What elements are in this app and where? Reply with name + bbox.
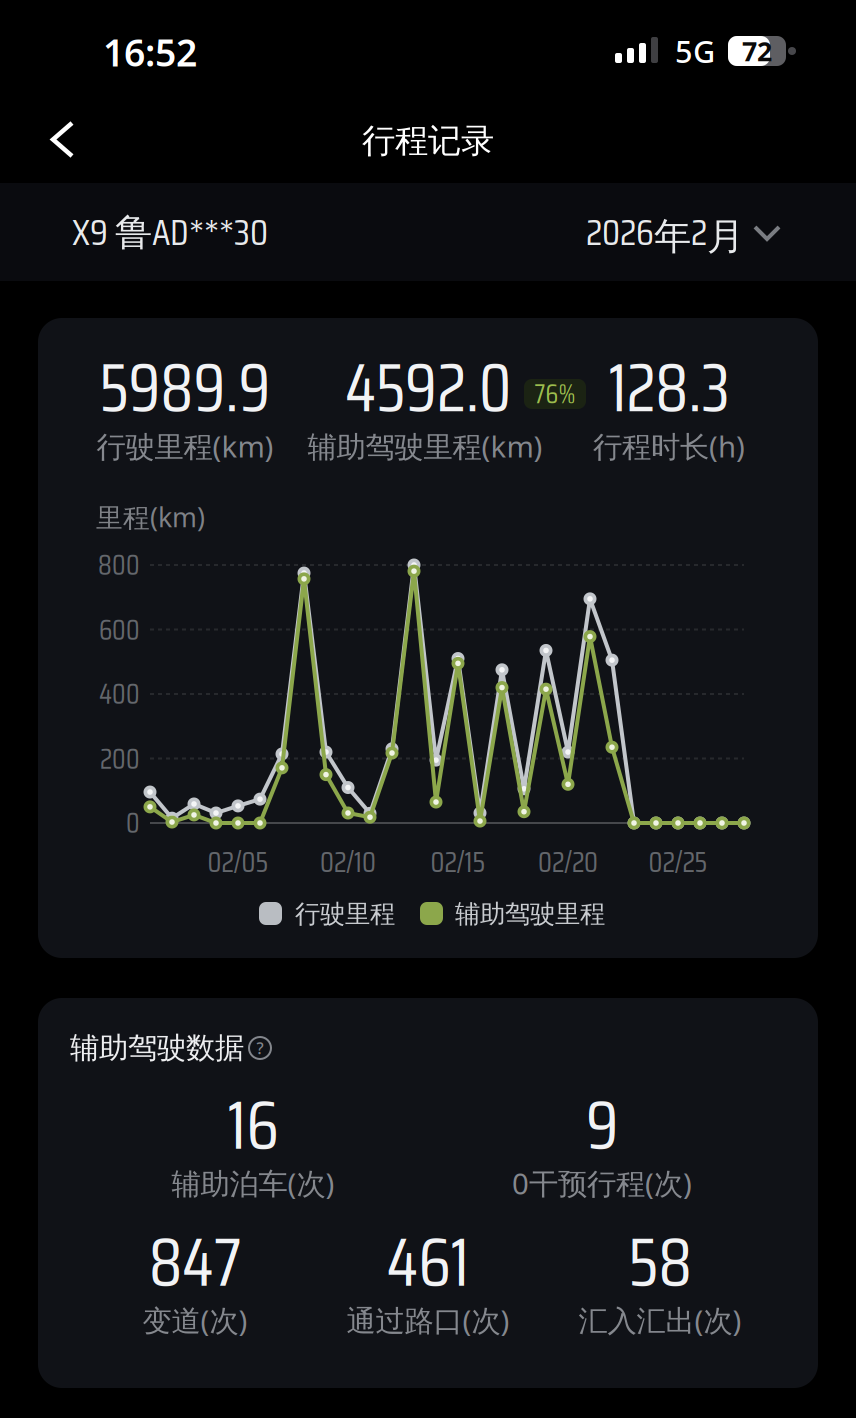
staticText: 76%	[534, 373, 575, 415]
staticText: 02/25	[648, 839, 707, 884]
staticText: 行程时长(h)	[593, 426, 745, 465]
button[interactable]: 选择月份	[0, 0, 180, 110]
staticText: 200	[100, 737, 140, 781]
staticText: 行程记录	[362, 120, 494, 161]
staticText: 0	[126, 801, 140, 845]
staticText: 600	[99, 608, 140, 652]
staticText: 461	[386, 1208, 469, 1315]
staticText: 72	[742, 33, 772, 69]
staticText: 58	[628, 1208, 691, 1315]
staticText: 02/15	[430, 839, 485, 884]
staticText: 行驶里程	[295, 898, 395, 929]
staticText: 9	[586, 1071, 618, 1178]
staticText: X9 鲁AD***30	[72, 203, 268, 261]
button[interactable]: X9 鲁AD***30	[0, 0, 230, 110]
staticText: 16	[227, 1071, 278, 1178]
button[interactable]: 帮助	[245, 1033, 275, 1063]
staticText: 2026年2月	[586, 203, 744, 261]
staticText: 辅助泊车(次)	[171, 1163, 334, 1202]
staticText: 02/20	[538, 839, 598, 884]
staticText: 400	[99, 672, 140, 716]
staticText: 辅助驾驶里程	[455, 898, 605, 929]
staticText: 变道(次)	[142, 1300, 247, 1339]
staticText: 行驶里程(km)	[96, 426, 273, 465]
staticText: 128.3	[608, 335, 729, 440]
staticText: 辅助驾驶数据	[70, 1030, 244, 1066]
staticText: 汇入汇出(次)	[578, 1300, 741, 1339]
staticText: 4592.0	[345, 335, 511, 440]
staticText: 辅助驾驶里程(km)	[307, 426, 542, 465]
staticText: 5G	[675, 31, 715, 71]
staticText: 5989.9	[99, 335, 270, 440]
staticText: 0干预行程(次)	[512, 1163, 692, 1202]
staticText: 800	[98, 543, 140, 587]
staticText: 里程(km)	[96, 499, 205, 535]
staticText: 通过路口(次)	[346, 1300, 509, 1339]
staticText: 16:52	[103, 27, 197, 77]
staticText: 02/10	[320, 839, 376, 884]
staticText: 02/05	[207, 839, 268, 884]
staticText: 847	[149, 1208, 241, 1315]
staticText: ?	[256, 1037, 263, 1059]
button[interactable]: Back	[0, 98, 112, 181]
